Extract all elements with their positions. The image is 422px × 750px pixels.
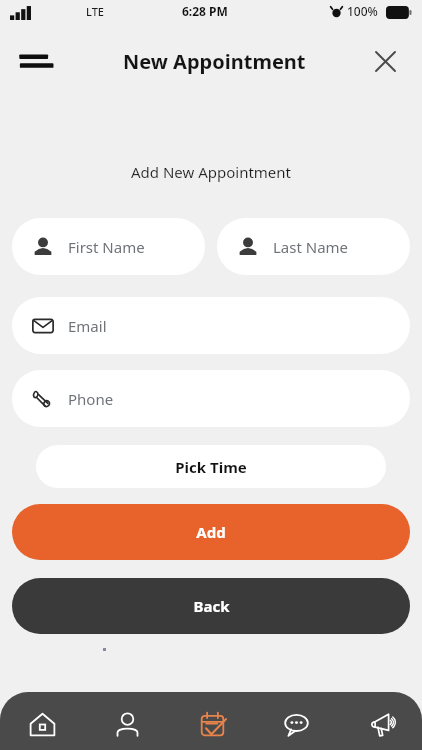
staticText: 6:28 PM: [182, 3, 228, 19]
staticText: LTE: [86, 4, 104, 19]
staticText: 100%: [347, 3, 378, 19]
staticText: Phone: [68, 389, 114, 409]
button[interactable]: Profile: [85, 692, 170, 750]
staticText: Email: [68, 316, 107, 336]
button[interactable]: Email: [12, 297, 410, 354]
staticText: Back: [193, 596, 230, 616]
button[interactable]: Back: [12, 578, 410, 634]
button[interactable]: Phone: [12, 370, 410, 427]
button[interactable]: Add: [12, 504, 410, 560]
button[interactable]: Appointments: [170, 692, 254, 750]
staticText: Last Name: [273, 237, 349, 257]
button[interactable]: Close: [364, 40, 406, 82]
staticText: Pick Time: [175, 457, 247, 477]
button[interactable]: Last Name: [217, 218, 410, 275]
button[interactable]: Announcements: [338, 692, 422, 750]
button[interactable]: Home: [0, 692, 85, 750]
button[interactable]: First Name: [12, 218, 205, 275]
button[interactable]: Messages: [254, 692, 338, 750]
staticText: Add New Appointment: [0, 162, 422, 182]
button[interactable]: Menu: [12, 40, 60, 80]
staticText: New Appointment: [123, 48, 306, 75]
staticText: First Name: [68, 237, 145, 257]
staticText: Add: [196, 522, 226, 542]
button[interactable]: Pick Time: [36, 445, 386, 488]
